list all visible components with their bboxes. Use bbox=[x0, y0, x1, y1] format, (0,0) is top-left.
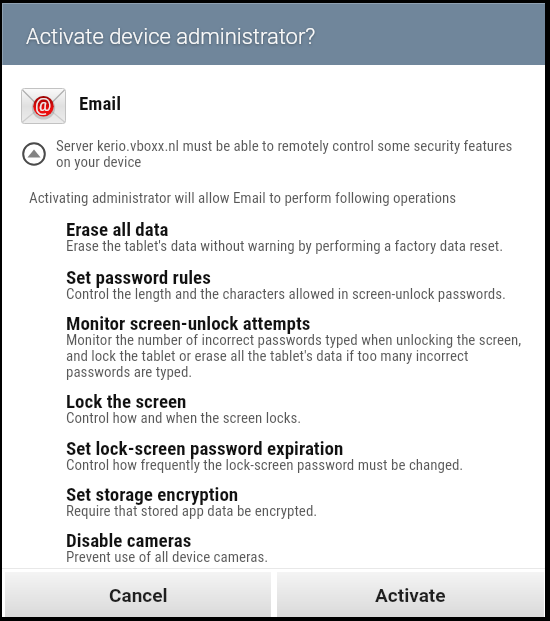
staticText: Set lock-screen password expiration bbox=[66, 437, 524, 459]
staticText: Activate bbox=[375, 584, 446, 606]
staticText: Set password rules bbox=[66, 266, 524, 288]
staticText: Set storage encryption bbox=[66, 483, 524, 505]
staticText: Activating administrator will allow Emai… bbox=[29, 189, 457, 207]
staticText: Monitor the number of incorrect password… bbox=[66, 331, 524, 380]
staticText: Prevent use of all device cameras. bbox=[66, 548, 524, 566]
staticText: Activate device administrator? bbox=[26, 24, 316, 50]
staticText: Server kerio.vboxx.nl must be able to re… bbox=[56, 137, 518, 170]
staticText: Disable cameras bbox=[66, 529, 524, 551]
button[interactable]: Cancel bbox=[5, 572, 271, 617]
staticText: Control how and when the screen locks. bbox=[66, 409, 524, 427]
staticText: Cancel bbox=[109, 584, 168, 606]
staticText: Control the length and the characters al… bbox=[66, 285, 524, 303]
button[interactable]: Collapse details bbox=[22, 142, 46, 166]
staticText: Erase the tablet's data without warning … bbox=[66, 237, 524, 255]
staticText: Lock the screen bbox=[66, 390, 524, 412]
staticText: Email bbox=[79, 92, 121, 114]
staticText: Monitor screen-unlock attempts bbox=[66, 312, 524, 334]
staticText: Require that stored app data be encrypte… bbox=[66, 502, 524, 520]
staticText: Erase all data bbox=[66, 218, 524, 240]
staticText: Control how frequently the lock-screen p… bbox=[66, 456, 524, 474]
button[interactable]: Activate bbox=[277, 572, 544, 617]
staticText: @ bbox=[35, 94, 52, 115]
